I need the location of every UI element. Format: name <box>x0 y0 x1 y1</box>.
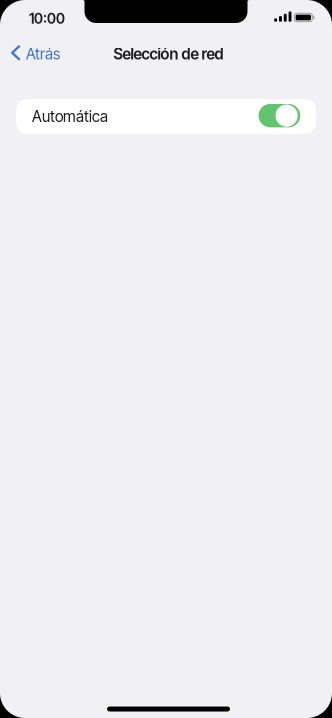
staticText: Automática <box>32 107 108 126</box>
staticText: Selección de red <box>113 45 223 63</box>
button[interactable]: Atrás <box>0 39 90 69</box>
button[interactable]: Automática <box>16 99 316 134</box>
staticText: Atrás <box>26 45 60 63</box>
staticText: 10:00 <box>29 10 65 27</box>
